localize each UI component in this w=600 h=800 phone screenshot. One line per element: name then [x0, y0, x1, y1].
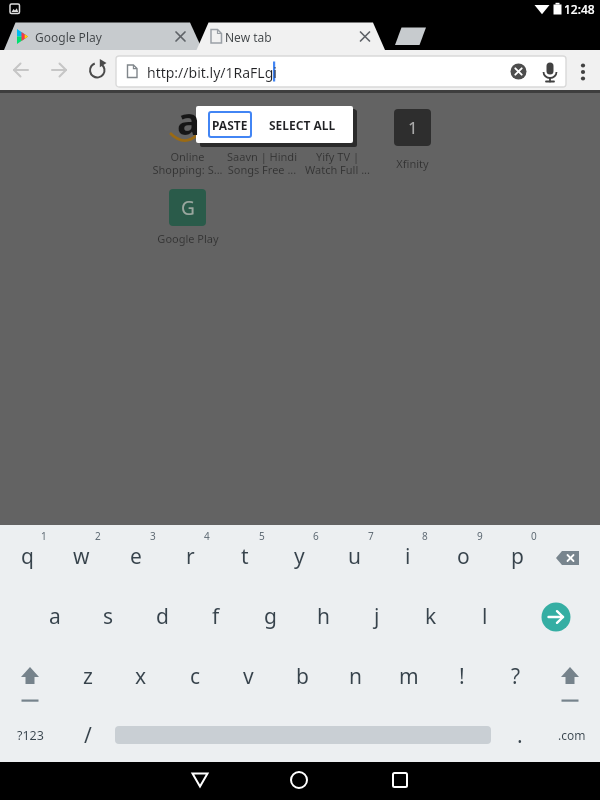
button[interactable]: s [81, 588, 135, 644]
staticText: http://bit.ly/1RaFLgi [147, 63, 277, 82]
staticText: Xfinity [396, 156, 429, 171]
button[interactable]: / [66, 708, 110, 762]
staticText: l [482, 602, 488, 631]
button[interactable]: v [222, 648, 274, 704]
button[interactable] [5, 648, 55, 702]
button[interactable] [170, 762, 230, 800]
staticText: w [73, 542, 90, 571]
staticText: q [21, 542, 34, 571]
staticText: t [241, 542, 249, 571]
button[interactable] [355, 27, 375, 47]
button[interactable]: ! [436, 648, 488, 704]
button[interactable]: m [383, 648, 435, 704]
button[interactable]: y [272, 528, 326, 584]
button[interactable] [245, 109, 282, 146]
button[interactable] [505, 58, 532, 85]
button[interactable]: t [218, 528, 272, 584]
staticText: z [83, 662, 93, 691]
staticText: y [294, 542, 305, 571]
button[interactable] [370, 762, 430, 800]
button[interactable] [115, 715, 491, 755]
staticText: a [177, 94, 200, 138]
staticText: 8 [422, 529, 428, 541]
staticText: 0 [531, 529, 537, 541]
button[interactable]: G [169, 189, 206, 226]
button[interactable]: u [327, 528, 381, 584]
staticText: h [317, 602, 330, 631]
button[interactable]: l [458, 588, 512, 644]
button[interactable] [571, 58, 595, 85]
staticText: 4 [204, 529, 210, 541]
button[interactable]: . [498, 708, 542, 762]
staticText: d [156, 602, 169, 631]
staticText: Google Play [35, 29, 102, 45]
button[interactable]: k [404, 588, 458, 644]
staticText: k [425, 602, 437, 631]
button[interactable]: ?123 [8, 708, 52, 762]
button[interactable]: c [169, 648, 221, 704]
button[interactable] [46, 57, 74, 85]
button[interactable]: i [381, 528, 435, 584]
button[interactable]: SELECT ALL [265, 112, 339, 137]
button[interactable]: PASTE [209, 112, 251, 137]
button[interactable] [116, 56, 566, 87]
button[interactable]: q [0, 528, 54, 584]
staticText: u [348, 542, 361, 571]
staticText: 3 [150, 529, 156, 541]
staticText: n [349, 662, 362, 691]
button[interactable] [529, 590, 583, 644]
staticText: Online Shopping: S... [152, 149, 223, 177]
button[interactable]: h [296, 588, 350, 644]
staticText: Saavn | Hindi Songs Free ... [227, 149, 297, 177]
button[interactable]: .com [548, 708, 596, 762]
button[interactable]: d [135, 588, 189, 644]
staticText: 1 [41, 529, 47, 541]
staticText: 1 [408, 116, 418, 139]
button[interactable] [545, 525, 600, 584]
button[interactable]: e [109, 528, 163, 584]
staticText: x [135, 662, 147, 691]
button[interactable] [269, 762, 329, 800]
staticText: g [264, 602, 277, 631]
staticText: c [190, 662, 201, 691]
button[interactable]: New tab [225, 28, 325, 46]
button[interactable]: http://bit.ly/1RaFLgi [147, 62, 347, 82]
button[interactable]: a [168, 94, 208, 138]
button[interactable] [320, 109, 357, 146]
button[interactable]: o [436, 528, 490, 584]
staticText: .com [558, 727, 586, 743]
staticText: o [457, 542, 470, 571]
staticText: f [212, 602, 220, 631]
staticText: / [84, 721, 92, 750]
staticText: PASTE [212, 117, 248, 133]
button[interactable]: ? [490, 648, 542, 704]
button[interactable] [8, 57, 36, 85]
button[interactable]: w [54, 528, 108, 584]
button[interactable] [536, 58, 563, 85]
button[interactable]: r [163, 528, 217, 584]
button[interactable]: g [243, 588, 297, 644]
staticText: 6 [313, 529, 319, 541]
staticText: 9 [477, 529, 483, 541]
staticText: r [186, 542, 195, 571]
button[interactable] [392, 26, 428, 47]
button[interactable]: p [490, 528, 544, 584]
staticText: ! [459, 662, 465, 691]
button[interactable] [170, 27, 190, 47]
staticText: 12:48 [564, 1, 595, 17]
button[interactable]: j [350, 588, 404, 644]
button[interactable]: z [62, 648, 114, 704]
button[interactable]: a [28, 588, 82, 644]
button[interactable]: 1 [394, 109, 431, 146]
staticText: i [405, 542, 411, 571]
button[interactable]: n [329, 648, 381, 704]
staticText: m [399, 662, 419, 691]
button[interactable]: f [189, 588, 243, 644]
button[interactable]: Google Play [35, 28, 155, 46]
button[interactable] [545, 648, 595, 702]
staticText: e [130, 542, 142, 571]
staticText: ? [511, 662, 521, 691]
button[interactable]: x [115, 648, 167, 704]
button[interactable] [84, 57, 112, 85]
button[interactable]: b [276, 648, 328, 704]
